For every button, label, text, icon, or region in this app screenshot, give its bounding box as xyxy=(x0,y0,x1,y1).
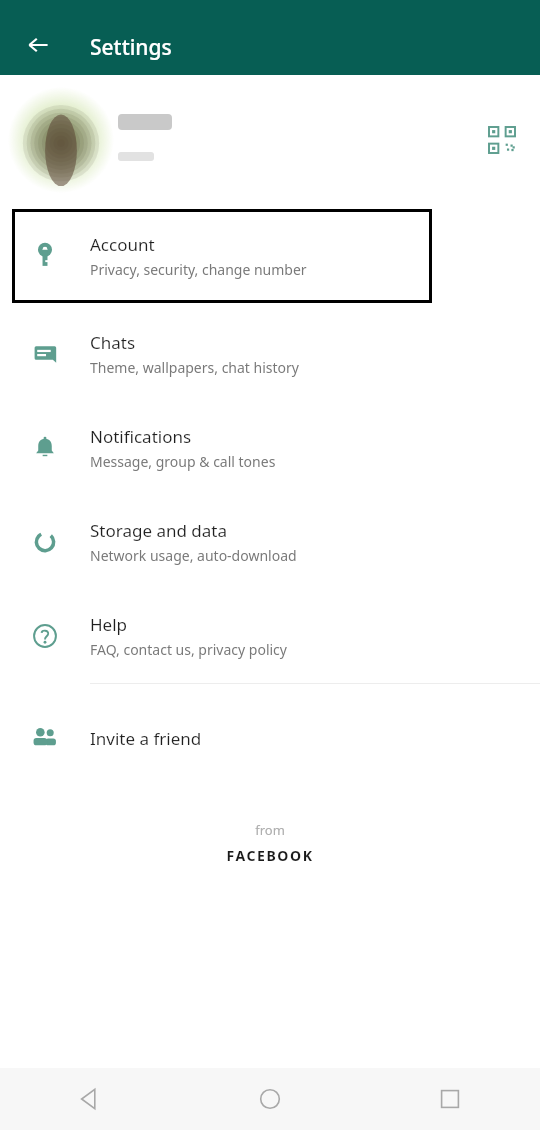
button[interactable]: Back xyxy=(0,1068,180,1130)
button[interactable]: Notifications xyxy=(0,401,540,495)
staticText: Privacy, security, change number xyxy=(90,260,307,279)
staticText: Account xyxy=(90,233,155,256)
staticText: Help xyxy=(90,613,128,636)
staticText: Invite a friend xyxy=(90,727,202,750)
staticText: Storage and data xyxy=(90,519,228,542)
staticText: Settings xyxy=(90,33,172,62)
staticText: FACEBOOK xyxy=(226,846,314,865)
staticText: Notifications xyxy=(90,425,192,448)
button[interactable]: Home xyxy=(180,1068,360,1130)
staticText: Message, group & call tones xyxy=(90,452,276,471)
staticText: Network usage, auto-download xyxy=(90,546,297,565)
staticText: Theme, wallpapers, chat history xyxy=(90,358,299,377)
staticText: FAQ, contact us, privacy policy xyxy=(90,640,287,659)
button[interactable]: Storage and data xyxy=(0,495,540,589)
button[interactable]: Back xyxy=(16,23,60,67)
button[interactable]: QR code xyxy=(478,116,526,164)
button[interactable]: Help xyxy=(0,589,540,683)
button[interactable]: Chats xyxy=(0,307,540,401)
button[interactable]: Account xyxy=(0,205,540,307)
button[interactable]: Invite a friend xyxy=(0,691,540,785)
staticText: Chats xyxy=(90,331,136,354)
staticText: from xyxy=(255,821,285,839)
button[interactable]: QR code xyxy=(0,75,540,205)
button[interactable]: Recents xyxy=(360,1068,540,1130)
